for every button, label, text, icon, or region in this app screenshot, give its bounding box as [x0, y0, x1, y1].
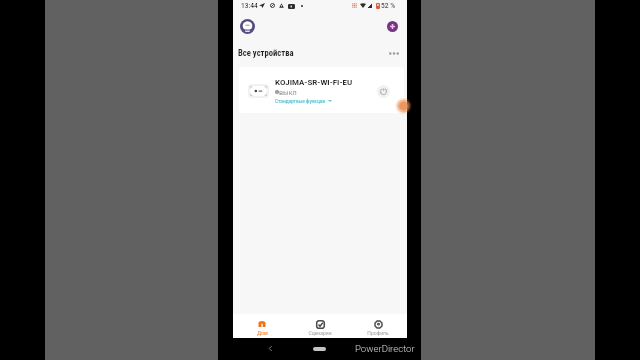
- button[interactable]: Home: [313, 347, 326, 351]
- button[interactable]: KOJIMA-SR-WI-FI-EU: [239, 67, 404, 113]
- button[interactable]: Стандартные функции: [275, 98, 332, 104]
- button[interactable]: Профиль: [349, 314, 407, 338]
- button[interactable]: Power toggle: [377, 85, 390, 98]
- staticText: KOJIMA-SR-WI-FI-EU: [275, 78, 353, 87]
- button[interactable]: Add device: [387, 21, 398, 32]
- button[interactable]: More options: [386, 45, 402, 61]
- staticText: Сценарии: [308, 330, 332, 336]
- button[interactable]: Сценарии: [291, 314, 349, 338]
- staticText: Стандартные функции: [275, 98, 326, 104]
- staticText: Дом: [257, 330, 268, 336]
- staticText: 52 %: [381, 2, 395, 10]
- button[interactable]: Account avatar: [240, 19, 255, 34]
- staticText: PowerDirector: [355, 343, 415, 354]
- staticText: Профиль: [367, 330, 389, 336]
- staticText: 13:44: [241, 2, 258, 10]
- button[interactable]: Back: [269, 346, 272, 351]
- staticText: выкл: [279, 88, 297, 96]
- staticText: Все устройства: [238, 48, 294, 58]
- button[interactable]: Дом: [233, 314, 291, 338]
